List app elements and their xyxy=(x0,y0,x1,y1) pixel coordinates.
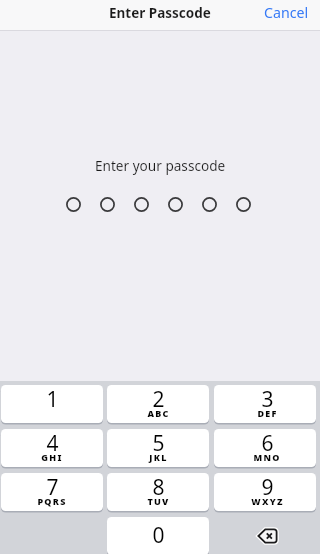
staticText: 7 xyxy=(46,473,59,502)
staticText: GHI xyxy=(41,451,63,463)
button[interactable]: 2 xyxy=(107,385,209,423)
staticText: 4 xyxy=(46,429,59,458)
staticText: ABC xyxy=(147,407,170,419)
staticText: Enter your passcode xyxy=(95,156,226,175)
staticText: 9 xyxy=(261,473,274,502)
button[interactable]: 4 xyxy=(1,429,103,467)
button[interactable]: 7 xyxy=(1,473,103,511)
staticText: Enter Passcode xyxy=(109,4,211,22)
staticText: 8 xyxy=(152,473,165,502)
staticText: MNO xyxy=(253,451,281,463)
staticText: 2 xyxy=(152,385,165,414)
button[interactable]: 5 xyxy=(107,429,209,467)
staticText: JKL xyxy=(149,451,168,463)
button[interactable]: 3 xyxy=(214,385,316,423)
staticText: 6 xyxy=(261,429,274,458)
staticText: 1 xyxy=(46,385,59,414)
button[interactable]: 8 xyxy=(107,473,209,511)
button[interactable]: 9 xyxy=(214,473,316,511)
staticText: TUV xyxy=(147,495,170,507)
button[interactable]: 6 xyxy=(214,429,316,467)
staticText: 3 xyxy=(261,385,274,414)
staticText: WXYZ xyxy=(251,495,284,507)
button[interactable]: Backspace xyxy=(214,517,316,554)
staticText: 0 xyxy=(152,521,165,550)
staticText: DEF xyxy=(257,407,278,419)
staticText: PQRS xyxy=(37,495,67,507)
staticText: 5 xyxy=(152,429,165,458)
button[interactable]: 1 xyxy=(1,385,103,423)
staticText: Cancel xyxy=(264,3,309,22)
button[interactable]: 0 xyxy=(107,517,209,554)
button[interactable]: Cancel xyxy=(253,0,320,27)
